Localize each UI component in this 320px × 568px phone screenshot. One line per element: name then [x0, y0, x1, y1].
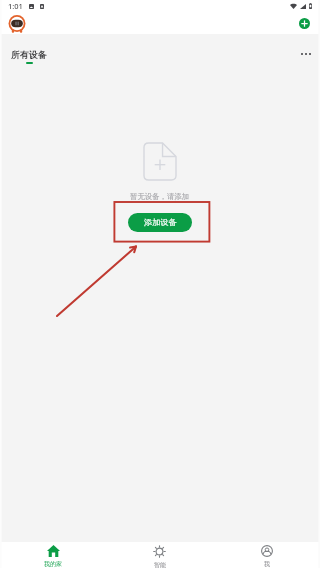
button[interactable]: 我 — [213, 542, 320, 568]
staticText: 添加设备 — [144, 217, 177, 227]
staticText: 智能 — [154, 561, 166, 568]
staticText: 暂无设备，请添加 — [130, 192, 190, 201]
button[interactable]: 添加设备 — [128, 213, 192, 232]
staticText: 我的家 — [44, 560, 62, 568]
button[interactable]: 我的家 — [0, 542, 106, 568]
button[interactable]: 智能 — [106, 542, 213, 568]
button[interactable]: Add device — [299, 18, 310, 29]
button[interactable]: 所有设备 — [11, 49, 47, 64]
button[interactable]: More options — [294, 42, 318, 66]
button[interactable]: App logo — [8, 15, 26, 33]
staticText: 所有设备 — [11, 49, 47, 60]
staticText: 我 — [264, 560, 270, 568]
staticText: 1:01 — [8, 1, 23, 11]
